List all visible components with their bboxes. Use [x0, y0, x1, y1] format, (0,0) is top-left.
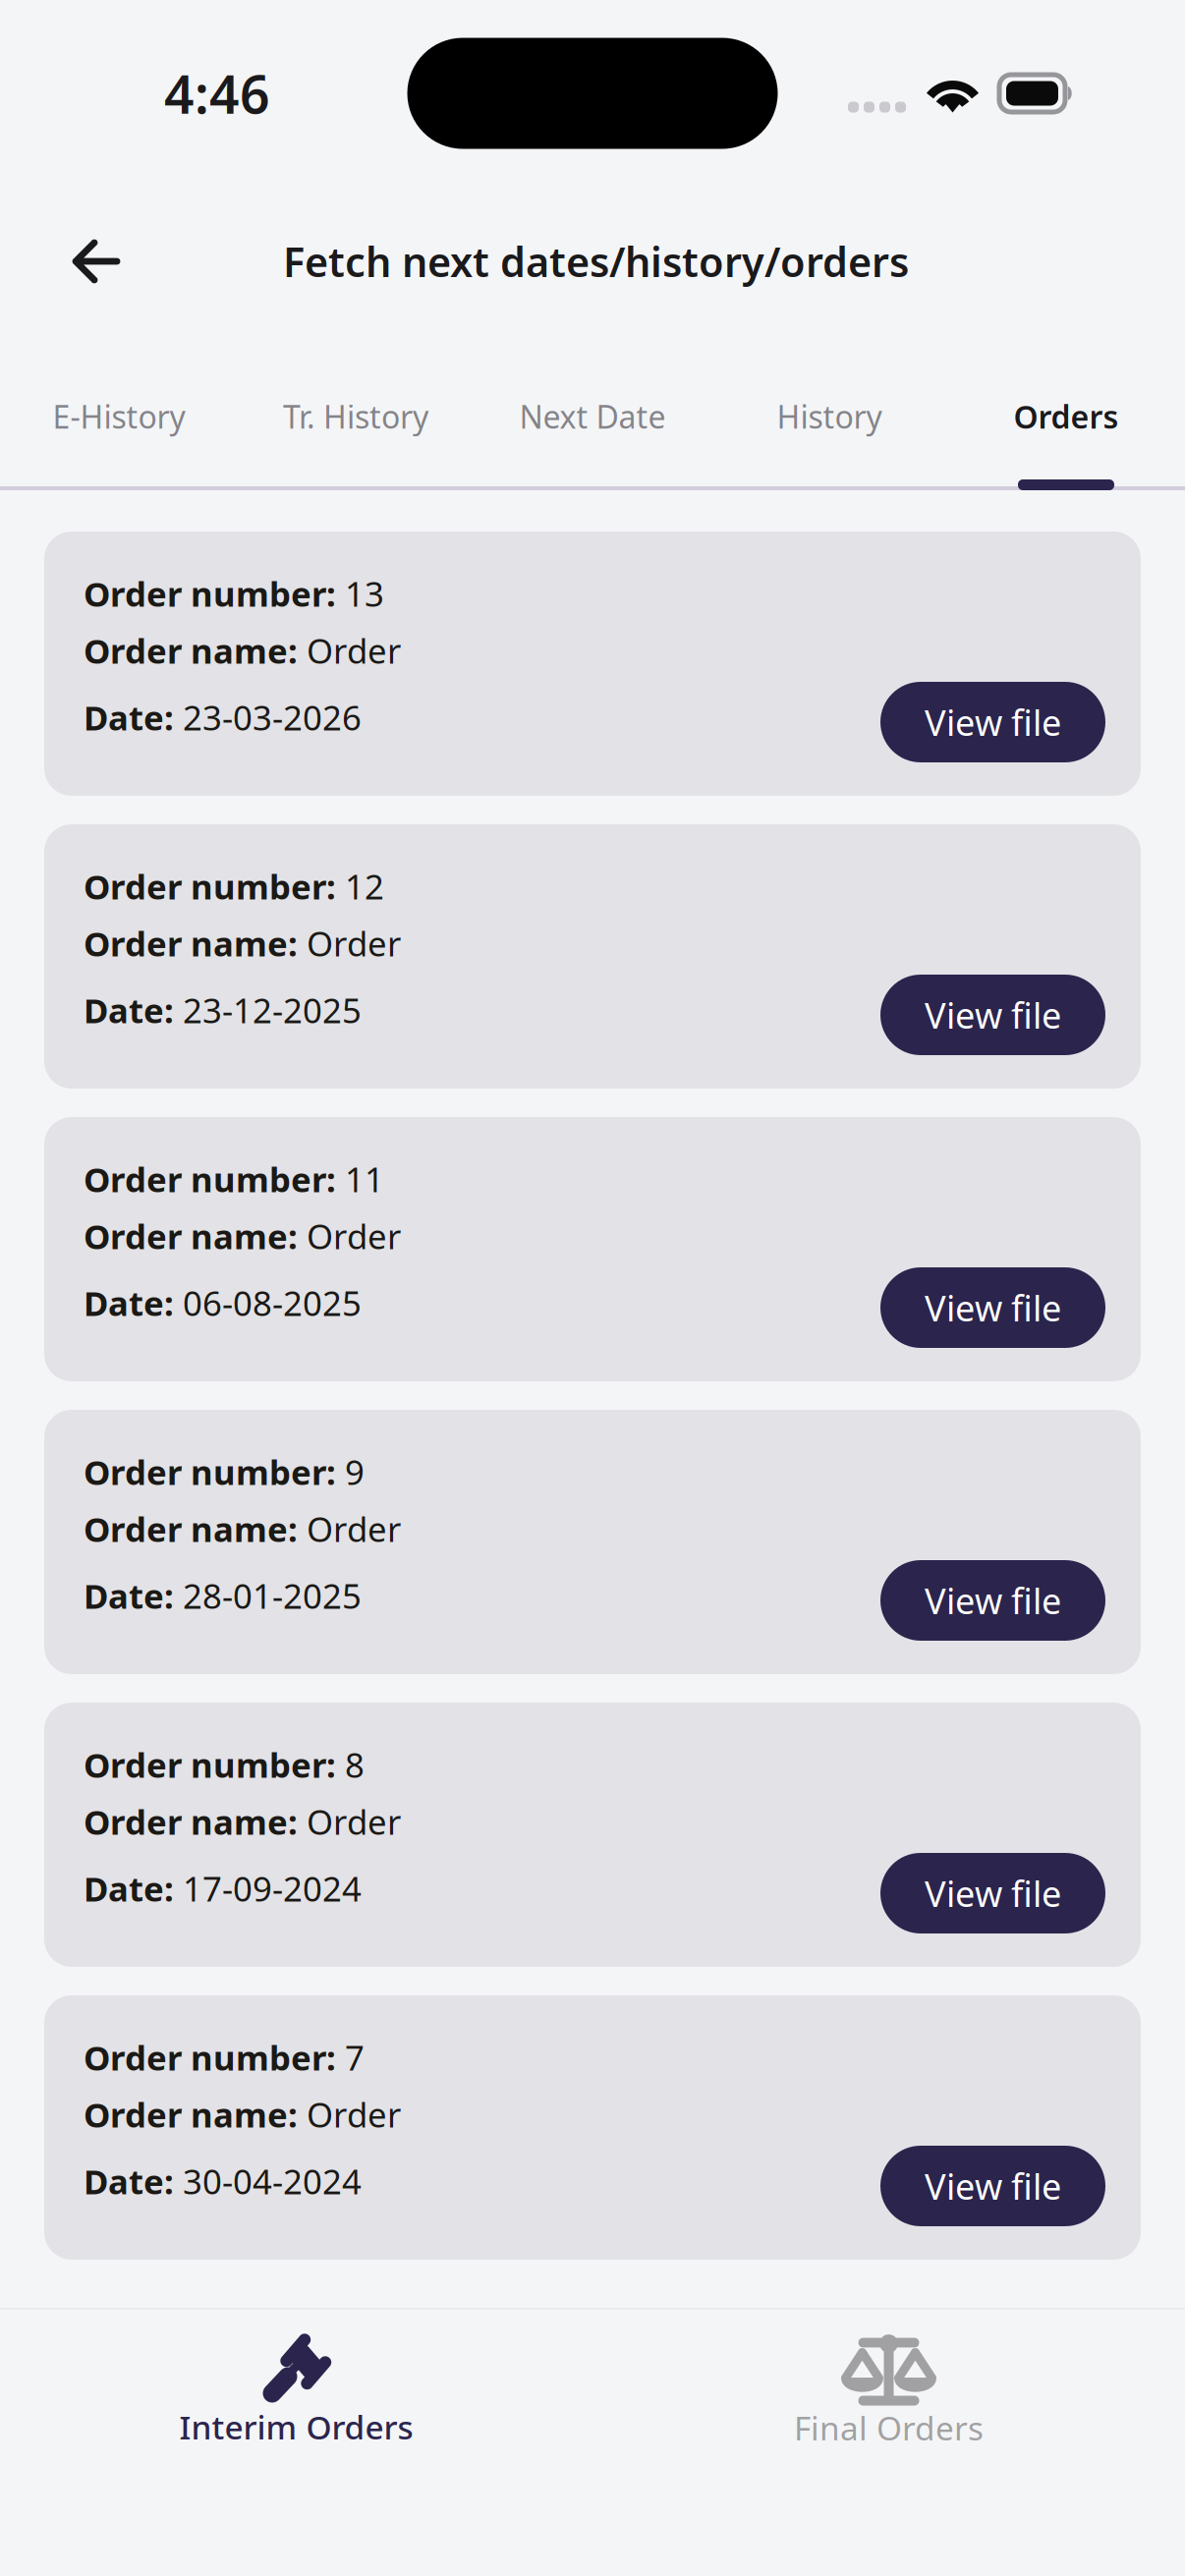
- staticText: Order number: 13: [84, 571, 384, 616]
- button[interactable]: Interim Orders: [0, 2333, 592, 2471]
- button[interactable]: View file: [880, 1560, 1105, 1641]
- staticText: Order number: 8: [84, 1742, 365, 1787]
- staticText: View file: [925, 699, 1061, 746]
- staticText: View file: [925, 2162, 1061, 2209]
- staticText: Date: 23-03-2026: [84, 695, 362, 740]
- button[interactable]: Final Orders: [592, 2333, 1185, 2471]
- staticText: View file: [925, 1870, 1061, 1917]
- staticText: Date: 06-08-2025: [84, 1280, 362, 1325]
- staticText: E-History: [53, 395, 185, 437]
- staticText: Order number: 7: [84, 2035, 365, 2080]
- staticText: Fetch next dates/history/orders: [283, 234, 909, 288]
- staticText: Order name: Order: [84, 1506, 401, 1551]
- staticText: Order name: Order: [84, 1799, 401, 1844]
- button[interactable]: View file: [880, 1853, 1105, 1933]
- button[interactable]: Orders: [948, 360, 1185, 488]
- staticText: View file: [925, 991, 1061, 1038]
- staticText: View file: [925, 1577, 1061, 1624]
- button[interactable]: History: [711, 360, 948, 488]
- staticText: Interim Orders: [179, 2405, 413, 2449]
- staticText: Date: 30-04-2024: [84, 2158, 362, 2204]
- staticText: Order name: Order: [84, 2092, 401, 2137]
- staticText: History: [777, 395, 882, 437]
- staticText: Date: 17-09-2024: [84, 1866, 362, 1911]
- staticText: Order number: 12: [84, 864, 384, 909]
- staticText: Orders: [1014, 395, 1119, 437]
- staticText: Tr. History: [283, 395, 428, 437]
- staticText: Order number: 11: [84, 1156, 384, 1202]
- staticText: Order name: Order: [84, 1213, 401, 1259]
- button[interactable]: Tr. History: [237, 360, 474, 488]
- staticText: 4:46: [164, 59, 270, 128]
- staticText: Date: 28-01-2025: [84, 1573, 362, 1618]
- staticText: View file: [925, 1284, 1061, 1331]
- button[interactable]: View file: [880, 2146, 1105, 2226]
- button[interactable]: View file: [880, 975, 1105, 1055]
- staticText: Next Date: [519, 395, 666, 437]
- button[interactable]: View file: [880, 682, 1105, 762]
- staticText: Date: 23-12-2025: [84, 987, 362, 1033]
- button[interactable]: E-History: [0, 360, 237, 488]
- staticText: Order number: 9: [84, 1449, 365, 1494]
- button[interactable]: Next Date: [474, 360, 711, 488]
- button[interactable]: View file: [880, 1267, 1105, 1348]
- staticText: Final Orders: [794, 2406, 984, 2450]
- staticText: Order name: Order: [84, 921, 401, 966]
- button[interactable]: Back: [47, 212, 145, 310]
- staticText: Order name: Order: [84, 628, 401, 673]
